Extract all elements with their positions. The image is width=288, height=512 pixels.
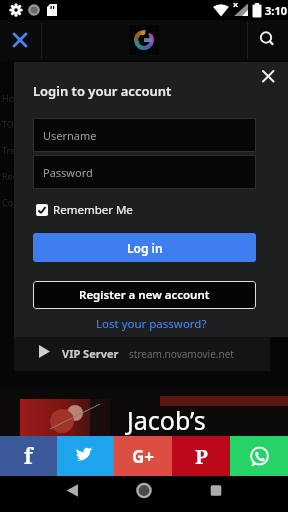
button[interactable]: Username [33,118,256,152]
staticText: Hom [2,92,23,104]
button[interactable] [48,476,96,512]
button[interactable]: VIP Server [14,337,270,371]
staticText: 3:10 [265,3,287,18]
staticText: Log in [127,240,163,256]
staticText: Login to your account [33,82,172,100]
button[interactable] [254,62,288,92]
button[interactable]: G+ [114,436,172,476]
staticText: f [24,442,33,471]
button[interactable] [230,436,288,476]
staticText: Com [2,196,22,208]
button[interactable]: Remember Me [36,202,133,218]
button[interactable]: Register a new account [33,281,256,309]
button[interactable]: f [0,436,57,476]
button[interactable] [129,25,159,55]
button[interactable]: Log in [33,233,256,262]
staticText: Remember Me [53,202,133,218]
staticText: Password [43,165,93,180]
staticText: P [195,443,208,470]
staticText: stream.novamovie.net [129,347,234,361]
button[interactable] [248,20,288,61]
button[interactable] [0,20,41,61]
staticText: VIP Server [62,346,119,361]
staticText: G+ [132,445,155,468]
button[interactable] [57,436,114,476]
staticText: Username [43,128,97,143]
button[interactable]: P [172,436,230,476]
staticText: Jacob’s [127,403,206,437]
staticText: Register a new account [79,287,210,303]
staticText: TOP [2,118,20,130]
staticText: Tre [2,144,16,156]
button[interactable] [120,476,168,512]
staticText: Lost your password? [96,316,207,332]
button[interactable]: Lost your password? [14,316,288,332]
button[interactable]: Password [33,155,256,189]
button[interactable] [192,476,240,512]
staticText: Rec [2,170,17,182]
